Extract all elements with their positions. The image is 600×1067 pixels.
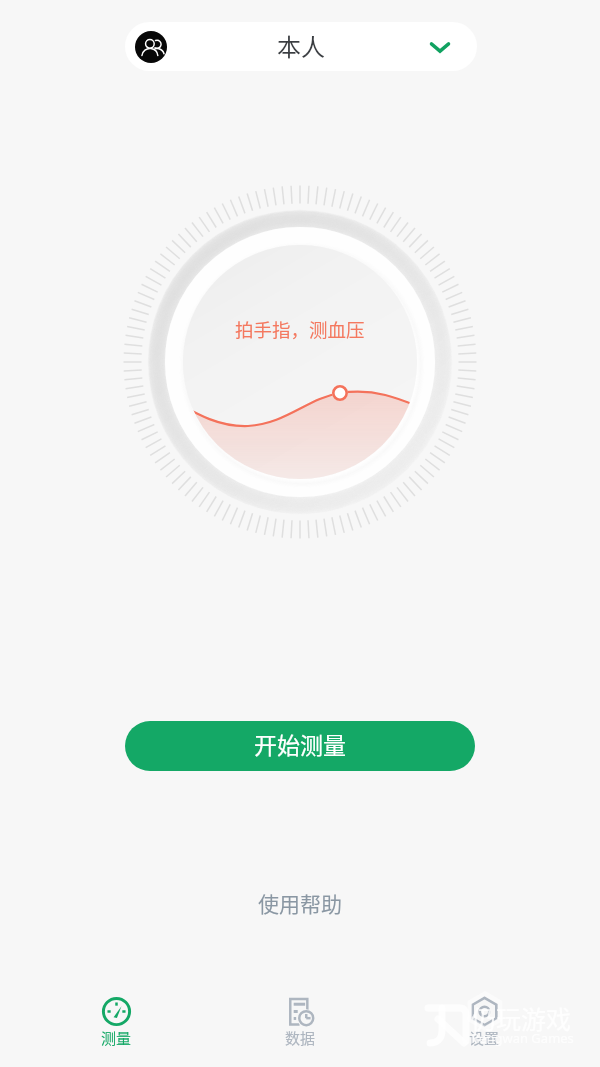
- staticText: 使用帮助: [258, 888, 342, 918]
- staticText: 数据: [285, 1027, 316, 1049]
- button[interactable]: 本人: [125, 22, 477, 71]
- button[interactable]: 设置: [392, 978, 576, 1067]
- staticText: 设置: [469, 1027, 500, 1049]
- staticText: 开始测量: [254, 727, 346, 760]
- button[interactable]: 数据: [208, 978, 392, 1067]
- staticText: 仍玩游戏: [471, 1000, 572, 1036]
- staticText: 拍手指，测血压: [235, 316, 365, 343]
- button[interactable]: 测量: [24, 978, 208, 1067]
- button[interactable]: Expand user selector: [423, 30, 457, 64]
- staticText: Rengwan Games: [471, 1029, 574, 1047]
- button[interactable]: 开始测量: [125, 721, 475, 771]
- staticText: 本人: [277, 28, 325, 63]
- button[interactable]: 使用帮助: [258, 888, 342, 918]
- staticText: 测量: [101, 1027, 132, 1049]
